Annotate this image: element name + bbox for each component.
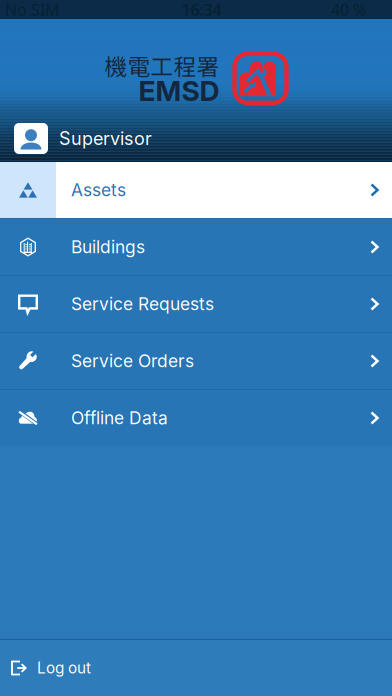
- staticText: 16:34: [181, 0, 221, 20]
- button[interactable]: Service Requests: [0, 276, 392, 332]
- button[interactable]: Service Orders: [0, 333, 392, 389]
- button[interactable]: Buildings: [0, 219, 392, 275]
- staticText: Assets: [71, 179, 126, 200]
- staticText: Offline Data: [71, 407, 168, 428]
- staticText: Supervisor: [59, 128, 152, 149]
- staticText: Log out: [37, 659, 91, 677]
- staticText: 機電工程署: [104, 49, 219, 82]
- button[interactable]: Assets: [0, 162, 392, 218]
- staticText: 40 %: [331, 0, 366, 20]
- staticText: Buildings: [71, 236, 145, 257]
- button[interactable]: Log out: [0, 640, 392, 696]
- staticText: Service Requests: [71, 293, 214, 314]
- staticText: [60, 0, 72, 24]
- staticText: No SIM: [5, 0, 60, 20]
- staticText: Service Orders: [71, 350, 194, 371]
- button[interactable]: Offline Data: [0, 390, 392, 446]
- staticText: EMSD: [138, 74, 219, 108]
